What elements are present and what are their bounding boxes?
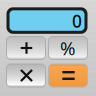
button[interactable]: Percent xyxy=(48,36,87,59)
button[interactable]: Equals xyxy=(48,64,87,87)
button[interactable]: Multiply xyxy=(6,64,45,87)
button[interactable]: Add xyxy=(6,36,45,59)
staticText: % xyxy=(60,36,76,60)
staticText: 0 xyxy=(72,9,82,32)
